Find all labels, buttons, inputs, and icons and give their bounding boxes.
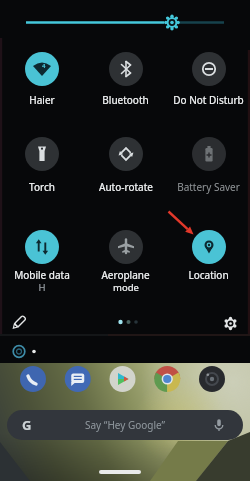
button[interactable] [198,365,226,393]
button[interactable]: Mobile data [0,230,83,295]
button[interactable] [10,12,240,34]
button[interactable] [218,310,244,336]
staticText: Haier [29,93,55,107]
staticText: G [22,416,32,434]
button[interactable]: Battery Saver [167,137,250,195]
staticText: Torch [29,180,55,194]
staticText: Auto-rotate [99,180,153,194]
button[interactable] [19,365,47,393]
button[interactable]: Location [167,230,250,283]
staticText: 4 [42,62,46,70]
staticText: Battery Saver [177,180,240,194]
button[interactable]: G [7,410,243,440]
staticText: H [38,281,46,294]
staticText: Location [188,268,229,282]
button[interactable] [0,338,250,364]
button[interactable] [64,365,92,393]
button[interactable]: Aeroplane [84,230,167,295]
staticText: Do Not Disturb [173,93,244,107]
button[interactable]: Do Not Disturb [167,52,250,108]
staticText: Mobile data [14,268,70,282]
staticText: Aeroplane [101,268,150,282]
staticText: Say “Hey Google” [85,418,166,432]
button[interactable] [7,310,33,336]
button[interactable]: 4 [0,52,83,108]
staticText: mode [113,281,139,294]
button[interactable]: Bluetooth [84,52,167,108]
button[interactable] [109,365,137,393]
staticText: Bluetooth [102,93,149,107]
button[interactable]: Torch [0,137,83,195]
button[interactable] [153,365,181,393]
button[interactable]: Auto-rotate [84,137,167,195]
